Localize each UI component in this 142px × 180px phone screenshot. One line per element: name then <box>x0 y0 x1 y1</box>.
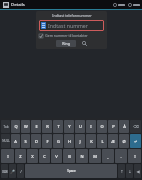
button[interactable]: A <box>11 134 20 148</box>
staticText: C <box>43 154 46 159</box>
button[interactable]: Voice input <box>9 164 16 178</box>
button[interactable]: Q <box>11 120 20 133</box>
staticText: T <box>57 124 60 129</box>
staticText: A <box>14 139 17 144</box>
button[interactable]: Backspace <box>130 120 141 133</box>
button[interactable]: . <box>115 149 127 163</box>
staticText: X <box>31 154 34 159</box>
button[interactable]: H <box>64 134 74 148</box>
staticText: Ø <box>122 139 126 144</box>
staticText: Z <box>19 154 22 159</box>
staticText: 🎤 <box>10 169 15 174</box>
button[interactable]: Indtast nummer <box>39 20 104 31</box>
staticText: S <box>24 139 27 144</box>
button[interactable]: L <box>97 134 107 148</box>
staticText: ⌫ <box>133 124 139 129</box>
button[interactable]: I <box>86 120 96 133</box>
staticText: ⌨ <box>2 169 8 174</box>
staticText: Q <box>14 124 18 129</box>
button[interactable]: D <box>31 134 41 148</box>
button[interactable]: Z <box>15 149 26 163</box>
button[interactable]: J <box>75 134 85 148</box>
button[interactable]: S <box>21 134 30 148</box>
button[interactable]: P <box>108 120 118 133</box>
staticText: B <box>68 154 71 159</box>
button[interactable]: K <box>86 134 96 148</box>
staticText: Space <box>67 169 76 173</box>
button[interactable]: / <box>17 164 24 178</box>
staticText: H <box>68 139 71 144</box>
staticText: ⇧ <box>133 154 137 159</box>
staticText: R <box>46 124 49 129</box>
button[interactable]: Down <box>126 164 133 178</box>
button[interactable]: N <box>76 149 88 163</box>
staticText: . <box>120 154 122 159</box>
button[interactable]: Shift <box>1 149 14 163</box>
button[interactable]: Enter <box>130 134 141 148</box>
staticText: U <box>79 124 82 129</box>
staticText: L <box>101 139 104 144</box>
button[interactable]: O <box>97 120 107 133</box>
staticText: F <box>46 139 49 144</box>
staticText: Indtast telefonnummer <box>52 13 92 18</box>
button[interactable]: C <box>39 149 50 163</box>
button[interactable]: W <box>21 120 30 133</box>
button[interactable]: Æ <box>108 134 118 148</box>
button[interactable]: U <box>75 120 85 133</box>
button[interactable]: Shift right <box>128 149 141 163</box>
staticText: M <box>93 154 97 159</box>
staticText: NULL <box>2 139 10 143</box>
staticText: P <box>112 124 115 129</box>
button[interactable]: Tab <box>1 120 10 133</box>
staticText: Å <box>123 124 126 129</box>
staticText: Indtast nummer <box>48 22 88 29</box>
staticText: Tab <box>3 125 9 129</box>
staticText: Ring <box>62 41 70 46</box>
button[interactable]: Settings <box>113 3 125 7</box>
staticText: W <box>24 124 28 129</box>
button[interactable]: Menu <box>128 3 140 7</box>
button[interactable]: Ø <box>119 134 129 148</box>
staticText: G <box>57 139 60 144</box>
button[interactable]: R <box>42 120 52 133</box>
button[interactable]: Ring <box>56 40 76 47</box>
button[interactable]: V <box>51 149 62 163</box>
button[interactable]: Search <box>81 40 88 47</box>
button[interactable]: Gem nummer til kontakter <box>39 33 104 38</box>
button[interactable]: E <box>31 120 41 133</box>
staticText: O <box>100 124 104 129</box>
button[interactable]: X <box>27 149 38 163</box>
button[interactable]: Keyboard switch <box>1 164 8 178</box>
staticText: E <box>35 124 38 129</box>
button[interactable]: G <box>53 134 63 148</box>
button[interactable]: Å <box>119 120 129 133</box>
staticText: Details <box>11 2 25 8</box>
staticText: / <box>20 169 22 174</box>
staticText: Æ <box>111 139 115 144</box>
staticText: V <box>55 154 58 159</box>
button[interactable]: , <box>102 149 114 163</box>
staticText: Gem nummer til kontakter <box>45 33 88 38</box>
button[interactable]: Up <box>118 164 125 178</box>
button[interactable]: M <box>89 149 101 163</box>
staticText: ↑ <box>120 169 124 174</box>
staticText: Y <box>68 124 71 129</box>
button[interactable]: Sound <box>134 164 141 178</box>
staticText: ↓ <box>128 169 132 174</box>
button[interactable]: NULL <box>1 134 10 148</box>
staticText: D <box>35 139 38 144</box>
button[interactable]: T <box>53 120 63 133</box>
staticText: J <box>79 139 81 144</box>
button[interactable]: App icon <box>2 1 9 8</box>
staticText: I <box>90 124 92 129</box>
button[interactable]: Y <box>64 120 74 133</box>
staticText: ◀ <box>136 169 140 174</box>
staticText: ⇧ <box>6 154 10 159</box>
staticText: K <box>90 139 93 144</box>
staticText: ↵ <box>134 139 138 144</box>
staticText: N <box>80 154 84 159</box>
button[interactable]: Space <box>25 164 117 178</box>
button[interactable]: F <box>42 134 52 148</box>
button[interactable]: B <box>63 149 75 163</box>
staticText: , <box>107 154 109 159</box>
